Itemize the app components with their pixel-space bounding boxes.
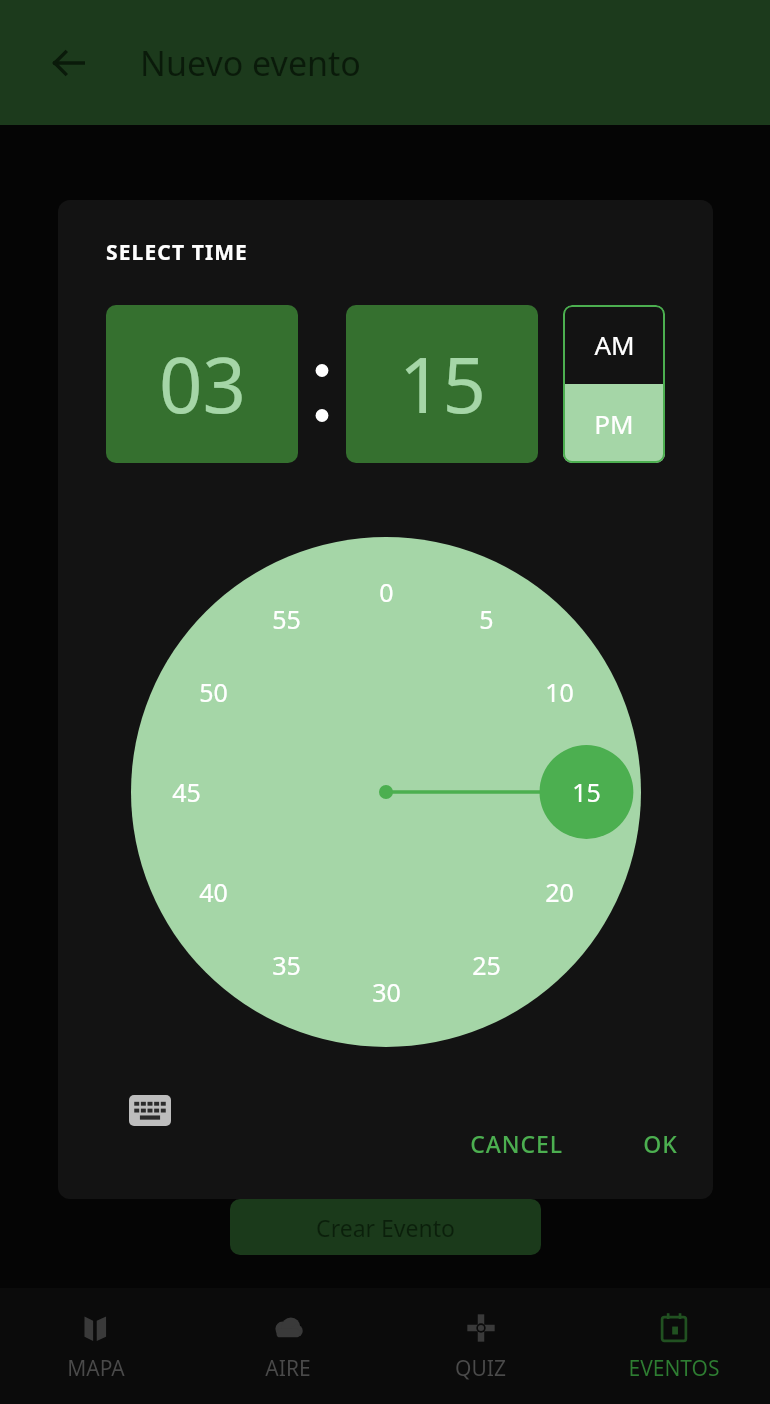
staticText: PM (594, 406, 634, 441)
button[interactable]: MAPA (0, 1288, 192, 1404)
button[interactable]: 03 (106, 305, 298, 463)
staticText: 15 (399, 332, 486, 436)
staticText: Crear Evento (316, 1212, 455, 1243)
button[interactable]: EVENTOS (577, 1288, 770, 1404)
button[interactable]: 0 (131, 537, 641, 1047)
staticText: 55 (272, 602, 301, 636)
staticText: AM (594, 327, 635, 362)
button[interactable]: AM (563, 305, 665, 384)
button[interactable]: Switch to text input (120, 1080, 180, 1140)
staticText: 20 (545, 875, 574, 909)
staticText: Nuevo evento (140, 40, 361, 86)
button[interactable]: QUIZ (384, 1288, 577, 1404)
staticText: 10 (545, 675, 574, 709)
button[interactable]: Back (40, 34, 98, 92)
button[interactable]: 15 (346, 305, 538, 463)
button[interactable]: OK (633, 1113, 688, 1173)
staticText: 03 (159, 332, 246, 436)
staticText: 0 (379, 575, 394, 609)
staticText: EVENTOS (628, 1354, 720, 1383)
staticText: 40 (199, 875, 228, 909)
staticText: CANCEL (470, 1128, 563, 1159)
staticText: 45 (172, 775, 201, 809)
staticText: 5 (479, 602, 494, 636)
button[interactable]: Crear Evento (230, 1199, 541, 1255)
staticText: OK (643, 1128, 678, 1159)
staticText: MAPA (67, 1354, 125, 1383)
staticText: AIRE (265, 1354, 311, 1383)
button[interactable]: AIRE (192, 1288, 384, 1404)
button[interactable]: CANCEL (460, 1113, 573, 1173)
staticText: SELECT TIME (106, 238, 248, 267)
staticText: 35 (272, 948, 301, 982)
staticText: 50 (199, 675, 228, 709)
staticText: QUIZ (455, 1354, 506, 1383)
staticText: 15 (572, 775, 601, 809)
staticText: 30 (372, 975, 401, 1009)
button[interactable]: PM (563, 384, 665, 463)
staticText: 25 (472, 948, 501, 982)
